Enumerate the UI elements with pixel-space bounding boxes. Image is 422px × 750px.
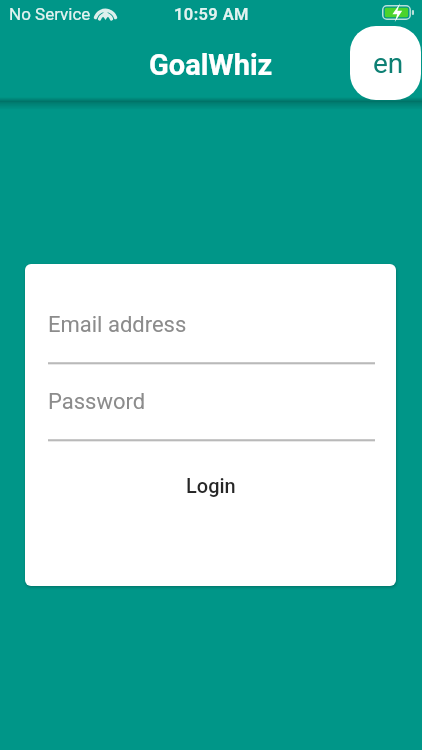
staticText: Password xyxy=(48,389,146,415)
staticText: GoalWhiz xyxy=(149,48,273,82)
staticText: Login xyxy=(186,474,236,497)
button[interactable]: Change language, currently English xyxy=(350,26,421,100)
staticText: Email address xyxy=(48,312,187,338)
staticText: en xyxy=(373,47,404,80)
staticText: No Service xyxy=(9,4,91,24)
button[interactable]: Email address xyxy=(48,304,375,365)
button[interactable]: Password xyxy=(48,381,375,442)
button[interactable]: Login xyxy=(25,462,396,508)
staticText: 10:59 AM xyxy=(174,5,249,24)
